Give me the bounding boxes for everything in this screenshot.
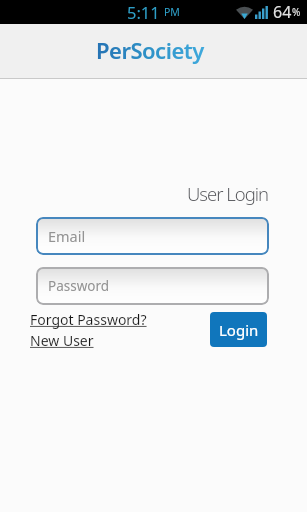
staticText: Login xyxy=(219,320,259,340)
staticText: User Login xyxy=(187,181,269,206)
staticText: Email xyxy=(48,226,86,246)
button[interactable]: New User xyxy=(30,331,94,350)
staticText: 5:11 xyxy=(127,1,160,23)
staticText: PM xyxy=(164,5,180,19)
button[interactable]: Email xyxy=(36,217,269,255)
staticText: % xyxy=(292,5,301,19)
button[interactable]: Password xyxy=(36,267,269,305)
button[interactable]: Forgot Password? xyxy=(30,310,147,329)
staticText: Password xyxy=(48,277,110,295)
button[interactable]: Login xyxy=(210,312,267,347)
staticText: 64 xyxy=(273,1,292,23)
staticText: PerSociety xyxy=(96,35,204,65)
